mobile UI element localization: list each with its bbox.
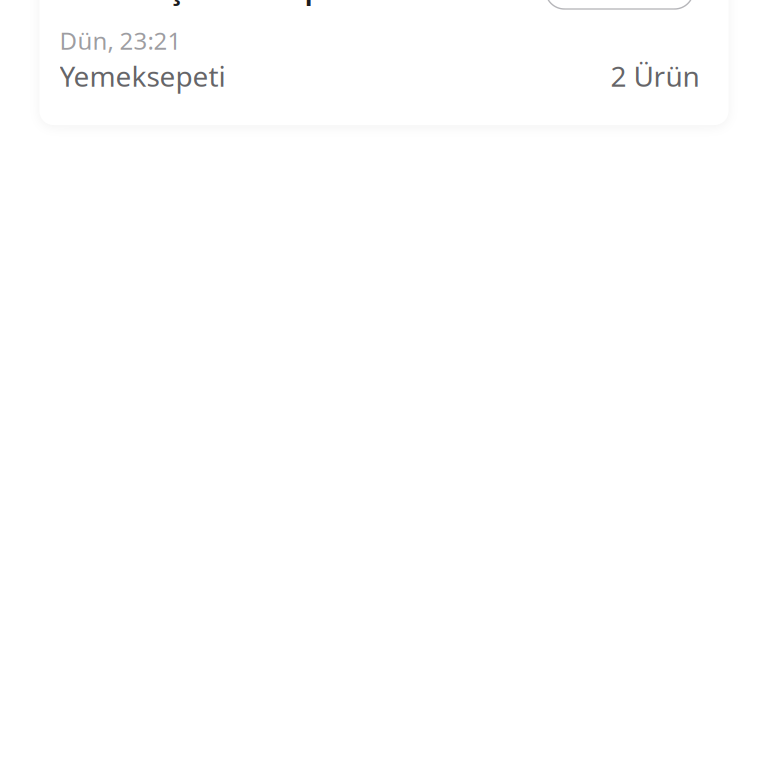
staticText: Verilmiş Olan Kuponlarım — [69, 0, 433, 7]
button[interactable]: Tekrarla — [545, 0, 693, 9]
staticText: Yemeksepeti — [59, 57, 225, 95]
staticText: Dün, 23:21 — [59, 24, 181, 56]
staticText: 2 Ürün — [610, 57, 699, 95]
button[interactable]: Verilmiş Olan Kuponlarım — [39, 0, 728, 125]
